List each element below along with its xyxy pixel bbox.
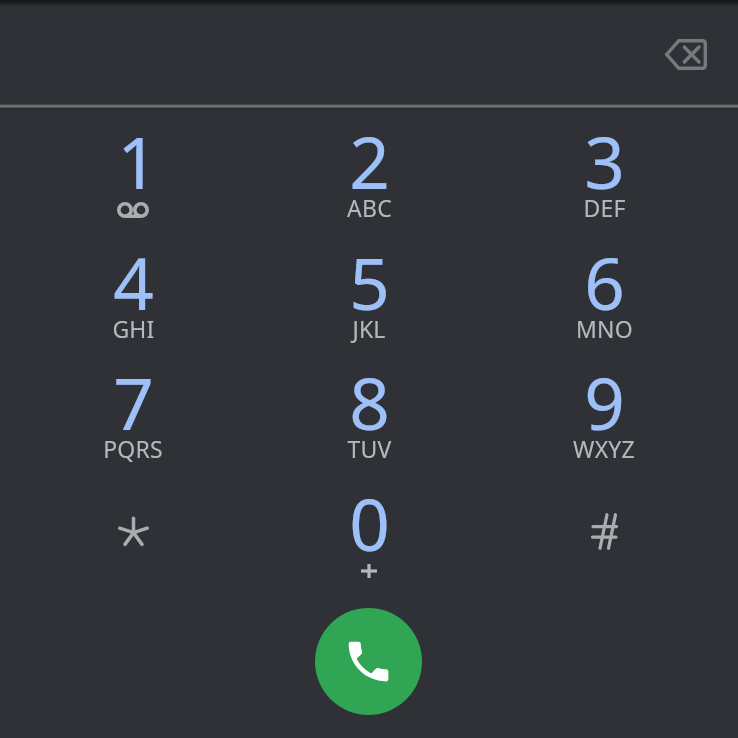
staticText: 0 xyxy=(349,475,390,572)
button[interactable]: Backspace xyxy=(654,22,718,86)
button[interactable]: Call xyxy=(315,608,422,715)
staticText: MNO xyxy=(576,313,633,344)
button[interactable]: 8 xyxy=(251,353,487,473)
button[interactable]: Star xyxy=(15,471,251,591)
staticText: ABC xyxy=(347,192,392,223)
button[interactable]: 7 xyxy=(15,353,251,473)
staticText: JKL xyxy=(352,313,386,344)
staticText: GHI xyxy=(112,313,155,344)
staticText: 8 xyxy=(349,354,390,451)
staticText: DEF xyxy=(583,192,626,223)
staticText: 1 xyxy=(117,113,158,210)
staticText: 6 xyxy=(584,234,625,331)
button[interactable]: 2 xyxy=(251,112,487,232)
button[interactable]: 6 xyxy=(486,233,722,353)
staticText: 2 xyxy=(349,113,390,210)
button[interactable]: 3 xyxy=(486,112,722,232)
staticText: 3 xyxy=(584,113,625,210)
staticText: PQRS xyxy=(103,433,163,464)
button[interactable]: 0 xyxy=(251,474,487,594)
button[interactable]: 9 xyxy=(486,353,722,473)
staticText: 4 xyxy=(113,234,154,331)
staticText: 5 xyxy=(349,234,390,331)
staticText: WXYZ xyxy=(573,433,635,464)
button[interactable]: 5 xyxy=(251,233,487,353)
button[interactable]: 1 xyxy=(15,112,251,232)
button[interactable]: Pound xyxy=(486,471,722,591)
button[interactable]: 4 xyxy=(15,233,251,353)
staticText: 7 xyxy=(113,354,154,451)
staticText: 9 xyxy=(584,354,625,451)
staticText: TUV xyxy=(347,433,392,464)
